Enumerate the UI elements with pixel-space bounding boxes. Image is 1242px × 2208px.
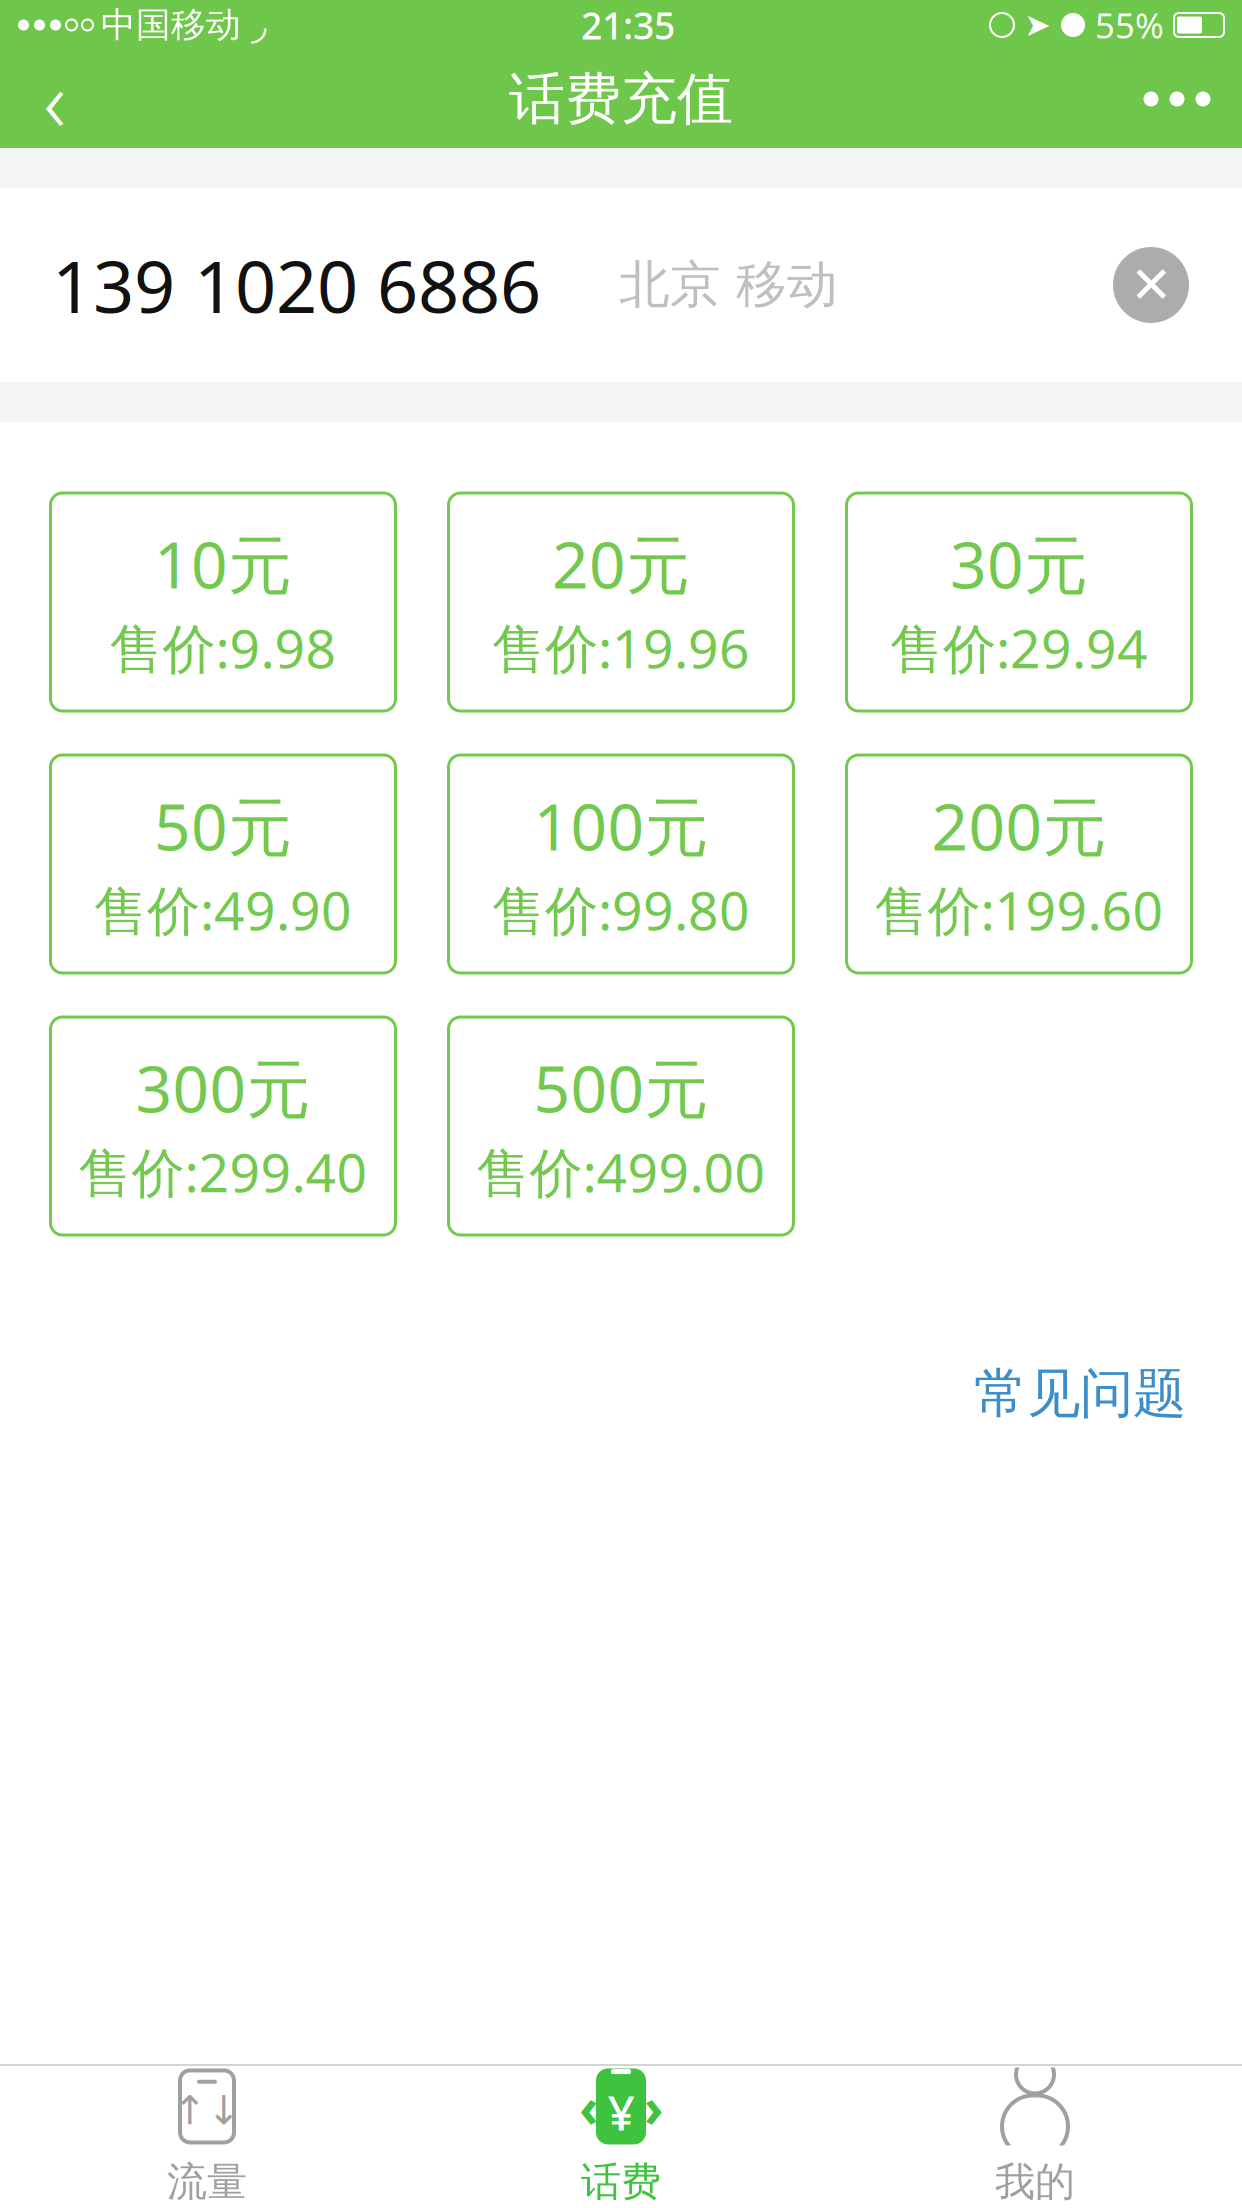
staticText: 10元 — [154, 521, 292, 606]
button[interactable]: 300元 — [50, 1017, 395, 1235]
staticText: 55% — [1095, 2, 1164, 48]
staticText: ➤ — [1024, 7, 1051, 43]
staticText: 售价:199.60 — [874, 874, 1163, 945]
staticText: 常见问题 — [974, 1361, 1186, 1426]
staticText: 北京 移动 — [619, 254, 838, 316]
staticText: ‹ — [43, 42, 66, 156]
staticText: ¥ — [607, 2080, 634, 2144]
staticText: 200元 — [931, 783, 1106, 868]
staticText: 售价:99.80 — [492, 874, 750, 945]
staticText: 21:35 — [581, 0, 675, 50]
staticText: 售价:29.94 — [890, 612, 1148, 683]
staticText: ✕ — [1130, 256, 1172, 314]
staticText: ◞ — [251, 2, 266, 48]
button[interactable]: More — [1112, 50, 1242, 148]
staticText: 话费 — [581, 2157, 661, 2206]
button[interactable]: 我的 — [828, 2066, 1242, 2208]
staticText: 20元 — [552, 521, 690, 606]
staticText: › — [644, 2071, 663, 2142]
button[interactable]: Back — [0, 50, 110, 148]
button[interactable]: 30元 — [846, 493, 1191, 711]
button[interactable]: 10元 — [50, 493, 395, 711]
button[interactable]: 50元 — [50, 755, 395, 973]
staticText: 话费充值 — [509, 65, 733, 133]
staticText: 300元 — [135, 1045, 310, 1130]
staticText: 售价:49.90 — [94, 874, 352, 945]
button[interactable]: 20元 — [448, 493, 793, 711]
staticText: ‹ — [579, 2071, 598, 2142]
button[interactable]: ‹ — [414, 2066, 828, 2208]
staticText: 售价:9.98 — [109, 612, 336, 683]
button[interactable]: ↑↓ — [0, 2066, 414, 2208]
staticText: 中国移动 — [101, 4, 241, 46]
staticText: 500元 — [533, 1045, 708, 1130]
staticText: ↑↓ — [173, 2088, 241, 2133]
button[interactable]: Clear number — [1096, 230, 1206, 340]
staticText: 100元 — [533, 783, 708, 868]
staticText: 售价:299.40 — [78, 1136, 367, 1207]
staticText: 流量 — [167, 2157, 247, 2206]
button[interactable]: 500元 — [448, 1017, 793, 1235]
staticText: 50元 — [154, 783, 292, 868]
staticText: 售价:499.00 — [476, 1136, 765, 1207]
staticText: 售价:19.96 — [492, 612, 750, 683]
staticText: 30元 — [950, 521, 1088, 606]
button[interactable]: 200元 — [846, 755, 1191, 973]
staticText: 139 1020 6886 — [52, 237, 541, 333]
staticText: 我的 — [995, 2157, 1075, 2206]
button[interactable]: 100元 — [448, 755, 793, 973]
button[interactable]: 常见问题 — [974, 1347, 1186, 1440]
